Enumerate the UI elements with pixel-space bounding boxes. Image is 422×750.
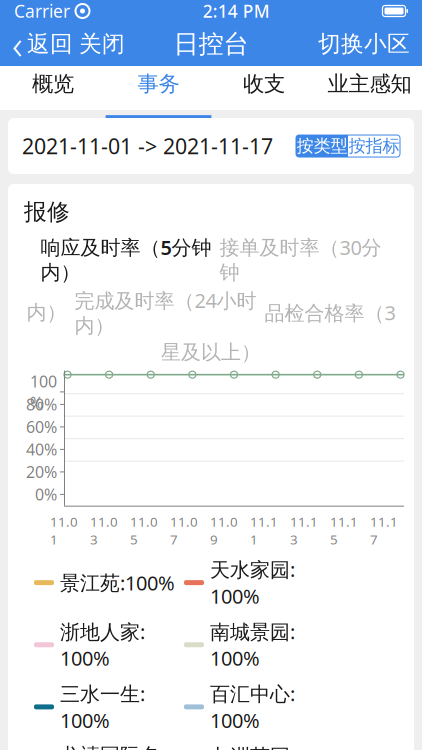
button[interactable]: 切换小区	[318, 24, 422, 64]
staticText: 完成及时率（24小时内）	[74, 287, 256, 338]
staticText: 0%	[35, 484, 57, 505]
button[interactable]: 业主感知	[316, 66, 422, 110]
button[interactable]: ‹	[0, 11, 73, 76]
staticText: 11.01	[50, 513, 78, 548]
staticText: 概览	[32, 71, 74, 97]
staticText: 星及以上）	[161, 340, 261, 365]
staticText: 按类型	[296, 135, 347, 157]
staticText: 切换小区	[318, 30, 410, 58]
staticText: 11.17	[370, 513, 398, 548]
staticText: 100%	[30, 371, 57, 413]
staticText: 景江苑:100%	[60, 569, 175, 596]
button[interactable]: 按指标	[348, 135, 400, 157]
staticText: 11.11	[250, 513, 278, 548]
staticText: 60%	[26, 416, 57, 437]
staticText: 80%	[26, 394, 57, 415]
button[interactable]: 接单及时率（30分钟	[219, 234, 381, 285]
button[interactable]: 收支	[211, 66, 316, 110]
staticText: 品检合格率（3	[264, 299, 395, 326]
staticText: 11.07	[170, 513, 198, 548]
staticText: 事务	[137, 71, 179, 97]
staticText: Carrier	[14, 0, 70, 22]
staticText: 天水家园:100%	[210, 556, 295, 609]
staticText: 11.09	[210, 513, 238, 548]
staticText: 关闭	[79, 30, 125, 58]
staticText: 内）	[26, 300, 66, 325]
button[interactable]: 按类型	[296, 135, 348, 157]
staticText: 百汇中心:100%	[210, 680, 295, 733]
staticText: 三水一生:100%	[60, 680, 145, 733]
button[interactable]: 完成及时率（24小时内）	[74, 287, 256, 338]
button[interactable]: 响应及时率（5分钟内）	[40, 234, 211, 285]
staticText: 返回	[27, 30, 73, 58]
staticText: 日控台	[173, 28, 248, 59]
staticText: 响应及时率（5分钟内）	[40, 234, 211, 285]
staticText: 2:14 PM	[203, 0, 270, 22]
staticText: 11.15	[330, 513, 358, 548]
staticText: 20%	[26, 461, 57, 482]
button[interactable]: 事务	[105, 66, 211, 110]
staticText: 按指标	[348, 135, 399, 157]
staticText: 2021-11-01 -> 2021-11-17	[22, 132, 273, 160]
button[interactable]: 概览	[0, 66, 105, 110]
staticText: ‹	[12, 17, 23, 70]
staticText: 龙禧国际名宅:100%	[60, 743, 160, 750]
staticText: 九洲芳园:100%	[210, 742, 295, 750]
staticText: 收支	[243, 71, 285, 97]
button[interactable]: 关闭	[73, 24, 131, 64]
staticText: 11.03	[90, 513, 118, 548]
staticText: 40%	[26, 439, 57, 460]
staticText: 浙地人家:100%	[60, 618, 145, 671]
staticText: 11.05	[130, 513, 158, 548]
staticText: 业主感知	[327, 71, 411, 97]
staticText: 11.13	[290, 513, 318, 548]
staticText: 接单及时率（30分钟	[219, 234, 381, 285]
staticText: 南城景园:100%	[210, 618, 295, 671]
staticText: 报修	[24, 198, 70, 226]
